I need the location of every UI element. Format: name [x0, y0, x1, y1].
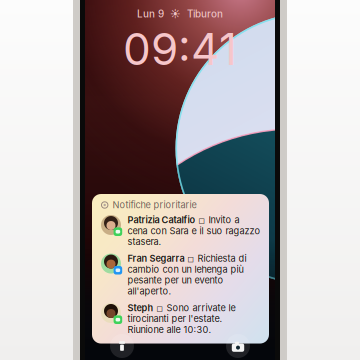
- button[interactable]: Steph ◻︎ Sono arrivate le tirocinanti pe…: [101, 303, 261, 336]
- staticText: Lia Longo Isabel ha prenotat…: [122, 308, 191, 326]
- staticText: 09:41: [123, 22, 237, 76]
- button[interactable]: Torcia: [110, 334, 134, 358]
- staticText: Lun 9 ☀ Tiburon: [137, 8, 223, 20]
- button[interactable]: Fran Segarra ◻︎ Richiesta di cambio con …: [101, 254, 261, 297]
- staticText: Fran Segarra ◻︎ Richiesta di cambio con …: [127, 253, 246, 296]
- staticText: Notifiche prioritarie: [112, 199, 196, 210]
- button[interactable]: Patrizia Catalfio ◻︎ Invito a cena con S…: [101, 215, 261, 248]
- staticText: Patrizia Catalfio ◻︎ Invito a cena con S…: [127, 214, 260, 247]
- staticText: Steph ◻︎ Sono arrivate le tirocinanti pe…: [127, 302, 235, 335]
- button[interactable]: Fotocamera: [226, 334, 250, 358]
